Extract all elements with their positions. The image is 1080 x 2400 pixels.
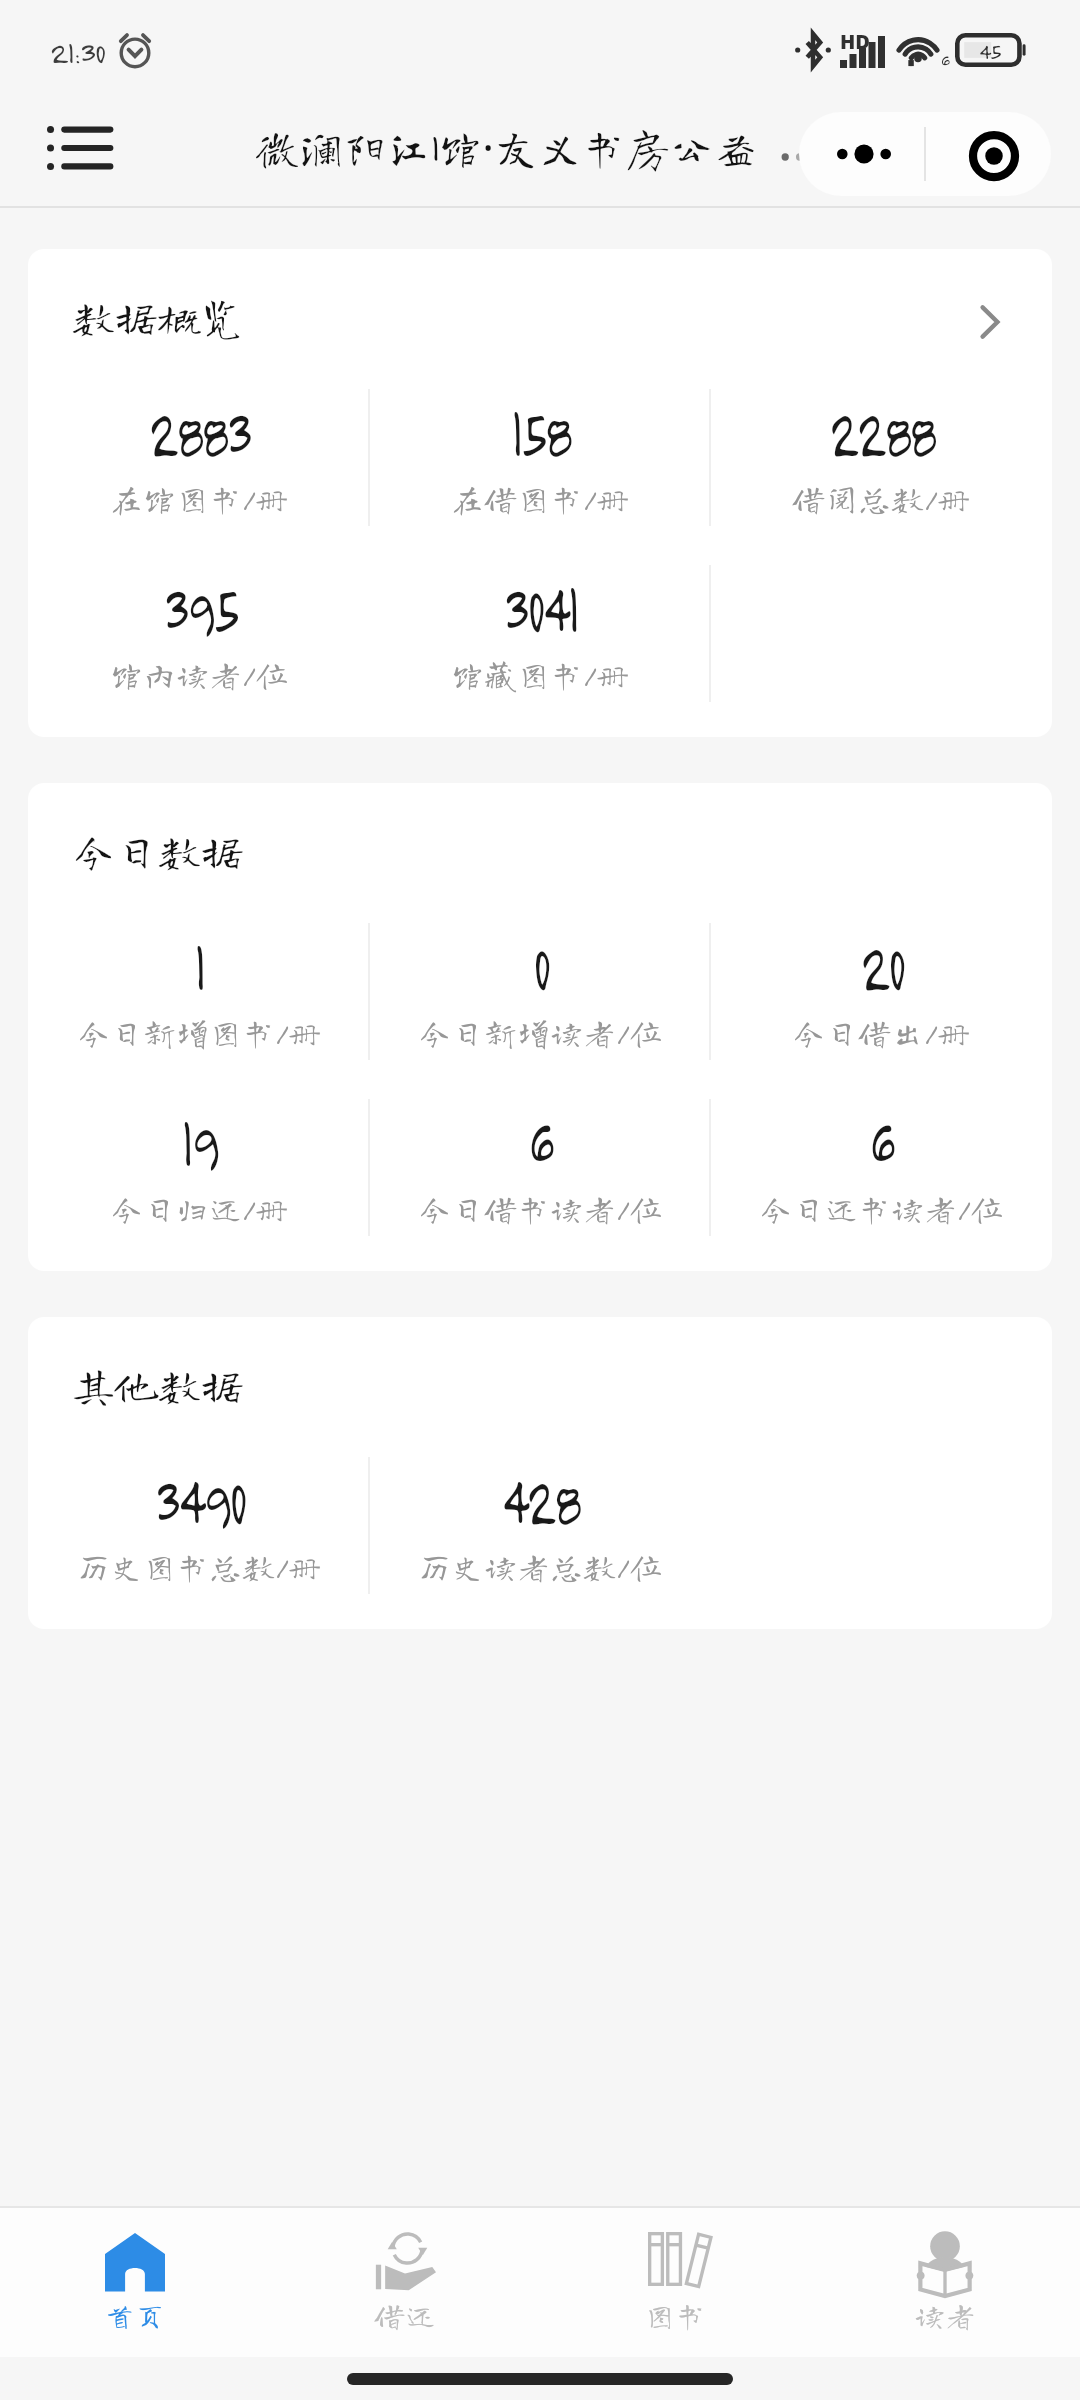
staticText: 45 [979,38,1001,64]
button[interactable]: 今日数据 [28,783,1052,1271]
staticText: 今日借出/册 [792,1016,971,1049]
staticText: 428 [502,1459,579,1541]
button[interactable]: 首页 [0,2208,270,2357]
staticText: HD [840,28,870,55]
staticText: 1 [194,925,205,1007]
button[interactable]: View details [964,296,1016,348]
staticText: 0 [533,925,549,1007]
staticText: 2883 [149,391,250,473]
staticText: 历史图书总数/册 [77,1550,322,1583]
button[interactable]: More options [799,112,924,196]
button[interactable]: Menu [39,108,119,188]
staticText: 借还 [374,2300,436,2331]
staticText: 首页 [104,2300,166,2331]
staticText: 6 [870,1101,893,1183]
staticText: 在借图书/册 [451,482,630,515]
button[interactable]: 图书 [540,2208,810,2357]
staticText: 微澜阳江1馆·友义书房公益 [255,117,759,177]
staticText: 馆藏图书/册 [451,658,630,691]
staticText: 数据概览 [72,295,244,338]
staticText: 2288 [829,391,935,473]
staticText: 图书 [644,2300,706,2331]
staticText: 今日数据 [72,829,244,872]
staticText: 今日新增读者/位 [418,1016,663,1049]
staticText: 395 [163,567,237,649]
staticText: 6 [529,1101,552,1183]
staticText: 其他数据 [72,1363,244,1406]
button[interactable]: Close mini program [926,112,1051,196]
staticText: 今日归还/册 [110,1192,289,1225]
staticText: 20 [860,925,904,1007]
button[interactable]: 数据概览 [28,249,1052,737]
button[interactable]: 其他数据 [28,1317,1052,1629]
staticText: 158 [511,391,570,473]
staticText: 19 [181,1101,217,1183]
staticText: 在馆图书/册 [110,482,289,515]
button[interactable]: 读者 [810,2208,1080,2357]
staticText: 读者 [914,2300,976,2331]
staticText: 借阅总数/册 [792,482,971,515]
staticText: 馆内读者/位 [110,658,289,691]
staticText: 今日还书读者/位 [759,1192,1004,1225]
staticText: 21:30 [50,33,105,70]
staticText: 6 [941,50,950,71]
staticText: 今日借书读者/位 [418,1192,663,1225]
staticText: 今日新增图书/册 [77,1016,322,1049]
staticText: 历史读者总数/位 [418,1550,663,1583]
staticText: 3041 [503,567,578,649]
button[interactable]: 借还 [270,2208,540,2357]
staticText: 3490 [154,1459,246,1541]
